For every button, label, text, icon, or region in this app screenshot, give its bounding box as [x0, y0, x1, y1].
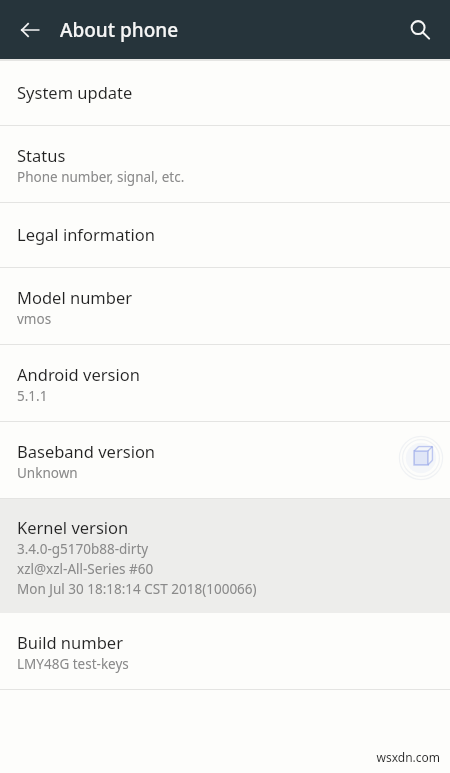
staticText: Unknown	[17, 464, 78, 482]
staticText: Status	[17, 144, 66, 166]
staticText: About phone	[60, 17, 398, 43]
staticText: vmos	[17, 310, 52, 328]
button[interactable]: Build number	[0, 613, 450, 689]
staticText: System update	[17, 81, 133, 103]
staticText: 5.1.1	[17, 387, 48, 405]
button[interactable]: System update	[0, 61, 450, 125]
staticText: Kernel version	[17, 516, 129, 538]
staticText: Build number	[17, 631, 123, 653]
staticText: Mon Jul 30 18:18:14 CST 2018(100066)	[17, 580, 257, 598]
staticText: xzl@xzl-All-Series #60	[17, 560, 154, 578]
button[interactable]: Baseband version	[0, 422, 450, 498]
staticText: wsxdn.com	[376, 749, 440, 765]
button[interactable]: Status	[0, 126, 450, 202]
button[interactable]: Legal information	[0, 203, 450, 267]
staticText: Model number	[17, 286, 133, 308]
staticText: LMY48G test-keys	[17, 655, 129, 673]
staticText: Legal information	[17, 223, 155, 245]
button[interactable]: Search	[398, 8, 442, 52]
button[interactable]: Back	[8, 8, 52, 52]
staticText: 3.4.0-g5170b88-dirty	[17, 540, 149, 558]
button[interactable]: Android version	[0, 345, 450, 421]
button[interactable]: Model number	[0, 268, 450, 344]
staticText: Android version	[17, 363, 140, 385]
staticText: Baseband version	[17, 440, 156, 462]
staticText: Phone number, signal, etc.	[17, 168, 185, 186]
button[interactable]: Kernel version	[0, 499, 450, 613]
